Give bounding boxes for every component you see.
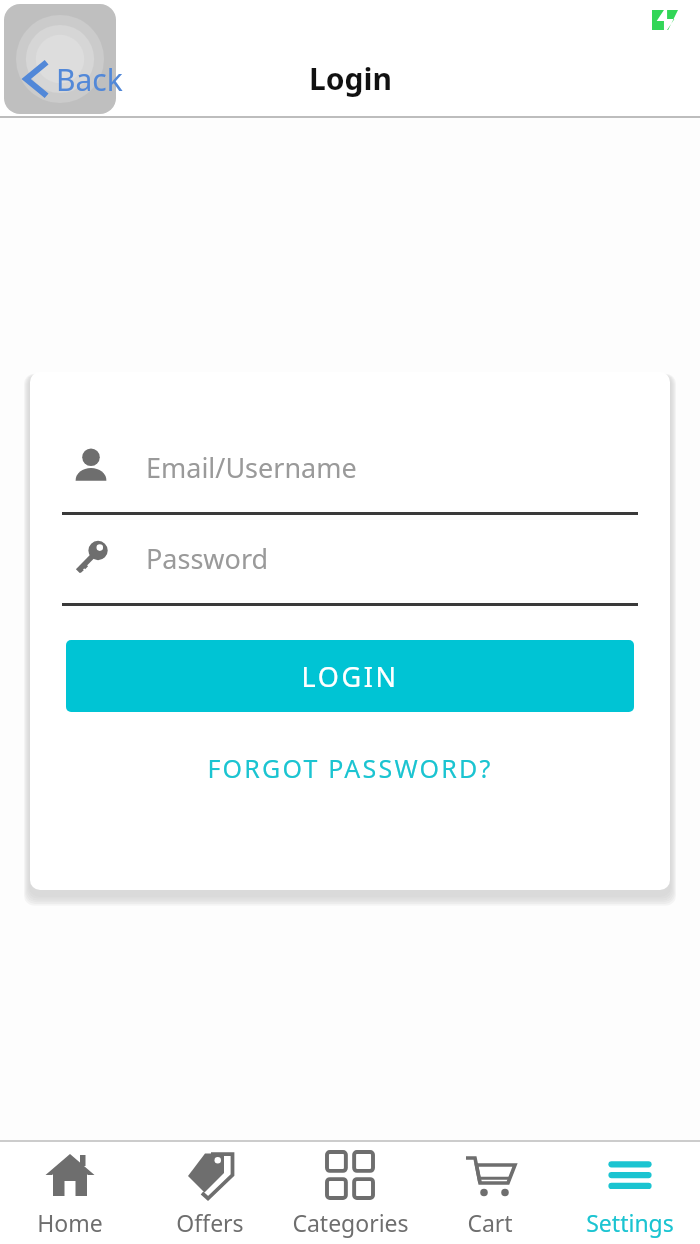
button[interactable]: Settings — [560, 1142, 700, 1244]
staticText: Password — [146, 540, 269, 577]
staticText: Offers — [176, 1207, 244, 1238]
button[interactable]: Categories — [280, 1142, 420, 1244]
staticText: Cart — [467, 1207, 513, 1238]
button[interactable]: Email/Username — [64, 438, 636, 496]
staticText: Email/Username — [146, 449, 357, 486]
staticText: LOGIN — [301, 658, 399, 695]
staticText: Back — [56, 59, 123, 100]
button[interactable]: Home — [0, 1142, 140, 1244]
button[interactable]: Password — [64, 529, 636, 587]
staticText: FORGOT PASSWORD? — [207, 751, 493, 785]
staticText: Login — [309, 58, 392, 99]
staticText: Home — [37, 1207, 103, 1238]
button[interactable]: Offers — [140, 1142, 280, 1244]
button[interactable]: Back — [4, 4, 116, 114]
staticText: Categories — [292, 1207, 409, 1238]
button[interactable]: Cart — [420, 1142, 560, 1244]
button[interactable]: FORGOT PASSWORD? — [30, 740, 670, 796]
staticText: Settings — [586, 1207, 674, 1238]
button[interactable]: LOGIN — [66, 640, 634, 712]
